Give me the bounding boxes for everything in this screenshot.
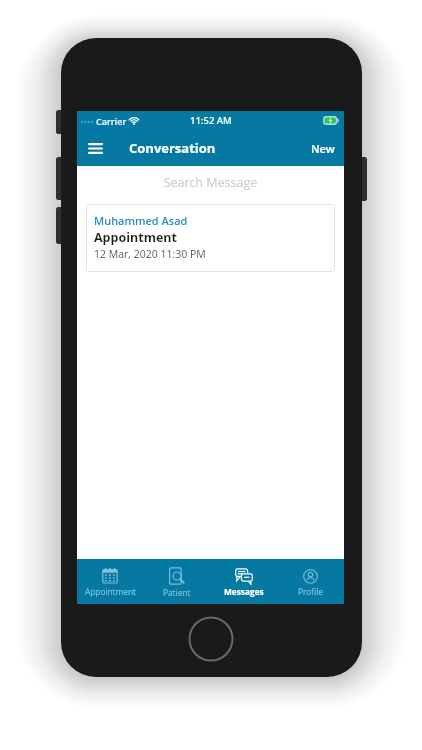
- staticText: Appointment: [94, 229, 177, 246]
- staticText: Patient: [163, 587, 191, 598]
- button[interactable]: Appointment: [77, 559, 143, 604]
- button[interactable]: Home: [188, 616, 234, 662]
- staticText: New: [311, 141, 335, 156]
- staticText: Appointment: [85, 586, 136, 597]
- staticText: 12 Mar, 2020 11:30 PM: [94, 247, 206, 261]
- staticText: Conversation: [129, 139, 216, 157]
- staticText: 11:52 AM: [190, 114, 232, 127]
- staticText: Messages: [224, 586, 264, 597]
- button[interactable]: Messages: [210, 559, 277, 604]
- button[interactable]: Patient: [143, 559, 210, 604]
- staticText: Carrier: [96, 115, 127, 127]
- button[interactable]: Muhammed Asad: [86, 204, 335, 272]
- staticText: Search Message: [77, 174, 344, 191]
- staticText: Muhammed Asad: [94, 213, 188, 228]
- button[interactable]: Open navigation menu: [83, 136, 107, 160]
- staticText: Profile: [298, 586, 323, 597]
- button[interactable]: Profile: [277, 559, 344, 604]
- button[interactable]: New: [302, 134, 344, 163]
